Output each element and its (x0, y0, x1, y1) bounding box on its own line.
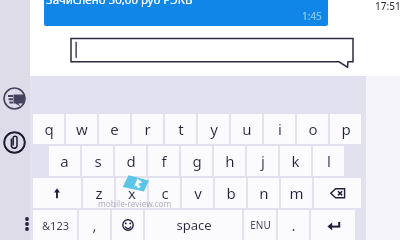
button[interactable] (314, 178, 361, 208)
staticText: t (178, 119, 184, 139)
staticText: 17:51 (375, 0, 400, 13)
button[interactable]: y (198, 114, 229, 144)
staticText: Зачислено 50,00 руб РЭКВ (46, 0, 193, 8)
staticText: 1:45 (302, 9, 322, 23)
button[interactable]: c (149, 178, 180, 208)
button[interactable]: Зачислено 50,00 руб РЭКВ (44, 0, 328, 26)
staticText: m (289, 183, 304, 203)
button[interactable]: ENU (244, 210, 276, 240)
staticText: space (176, 216, 212, 234)
button[interactable] (33, 178, 81, 208)
button[interactable]: h (214, 146, 245, 176)
staticText: n (259, 183, 269, 203)
button[interactable]: x (116, 178, 147, 208)
button[interactable]: . (278, 210, 309, 240)
button[interactable]: l (313, 146, 344, 176)
staticText: o (308, 119, 318, 139)
button[interactable]: j (247, 146, 278, 176)
button[interactable]: , (79, 210, 110, 240)
staticText: . (291, 215, 296, 235)
button[interactable]: b (215, 178, 246, 208)
staticText: , (92, 215, 97, 235)
button[interactable]: r (132, 114, 163, 144)
staticText: j (261, 151, 265, 171)
button[interactable]: a (49, 146, 80, 176)
button[interactable]: space (145, 210, 242, 240)
button[interactable]: Send message (3, 87, 26, 110)
button[interactable]: More options (20, 212, 34, 236)
button[interactable]: p (330, 114, 361, 144)
staticText: r (144, 119, 151, 139)
button[interactable]: Attach (3, 131, 26, 154)
button[interactable] (311, 210, 355, 240)
staticText: b (226, 183, 236, 203)
staticText: c (161, 183, 169, 203)
button[interactable]: z (83, 178, 114, 208)
staticText: s (94, 151, 102, 171)
button[interactable]: v (182, 178, 213, 208)
button[interactable]: g (181, 146, 212, 176)
staticText: i (278, 119, 282, 139)
button[interactable]: f (148, 146, 179, 176)
staticText: y (210, 119, 218, 139)
staticText: w (76, 119, 88, 139)
staticText: z (95, 183, 103, 203)
staticText: l (327, 151, 331, 171)
button[interactable]: w (66, 114, 97, 144)
staticText: e (110, 119, 119, 139)
button[interactable] (112, 210, 143, 240)
button[interactable]: e (99, 114, 130, 144)
button[interactable]: d (115, 146, 146, 176)
button[interactable]: u (231, 114, 262, 144)
button[interactable]: k (280, 146, 311, 176)
button[interactable]: m (281, 178, 312, 208)
button[interactable]: q (33, 114, 64, 144)
staticText: u (242, 119, 252, 139)
button[interactable]: s (82, 146, 113, 176)
staticText: a (60, 151, 69, 171)
button[interactable]: o (297, 114, 328, 144)
button[interactable]: t (165, 114, 196, 144)
staticText: k (291, 151, 300, 171)
staticText: f (161, 151, 167, 171)
staticText: q (44, 119, 54, 139)
staticText: d (126, 151, 136, 171)
staticText: h (225, 151, 235, 171)
staticText: g (192, 151, 202, 171)
button[interactable]: &123 (33, 210, 77, 240)
staticText: x (128, 183, 136, 203)
staticText: &123 (42, 218, 69, 233)
button[interactable]: n (248, 178, 279, 208)
staticText: mobile-review.com (98, 198, 172, 209)
staticText: p (341, 119, 351, 139)
staticText: ENU (250, 218, 271, 232)
button[interactable]: i (264, 114, 295, 144)
staticText: v (194, 183, 202, 203)
